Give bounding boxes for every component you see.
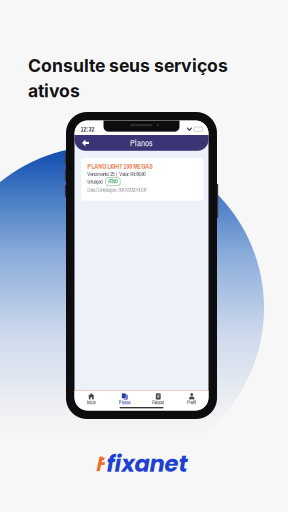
- staticText: Data Contratação: 30/07/2020 00:00: [87, 186, 146, 193]
- staticText: fixanet: [106, 448, 187, 480]
- staticText: PLANO LIGHT 100 MEGAS: [87, 162, 153, 171]
- staticText: Início: [87, 399, 96, 406]
- staticText: ATIVO: [108, 179, 118, 185]
- staticText: ativos: [28, 80, 80, 102]
- staticText: Consulte seus serviços: [28, 55, 228, 76]
- staticText: Planos: [130, 137, 153, 149]
- button[interactable]: Perfil: [175, 390, 208, 406]
- staticText: Situação:: [87, 178, 103, 185]
- button[interactable]: Faturas: [141, 390, 175, 406]
- button[interactable]: Voltar: [78, 135, 92, 151]
- staticText: Perfil: [187, 399, 196, 406]
- button[interactable]: Início: [74, 390, 108, 406]
- staticText: Faturas: [152, 399, 164, 406]
- staticText: Vencimento: 25 | Valor: R$ 69,90: [87, 170, 145, 178]
- staticText: 12:32: [80, 125, 94, 134]
- staticText: Planos: [119, 399, 131, 406]
- button[interactable]: Planos: [108, 390, 141, 406]
